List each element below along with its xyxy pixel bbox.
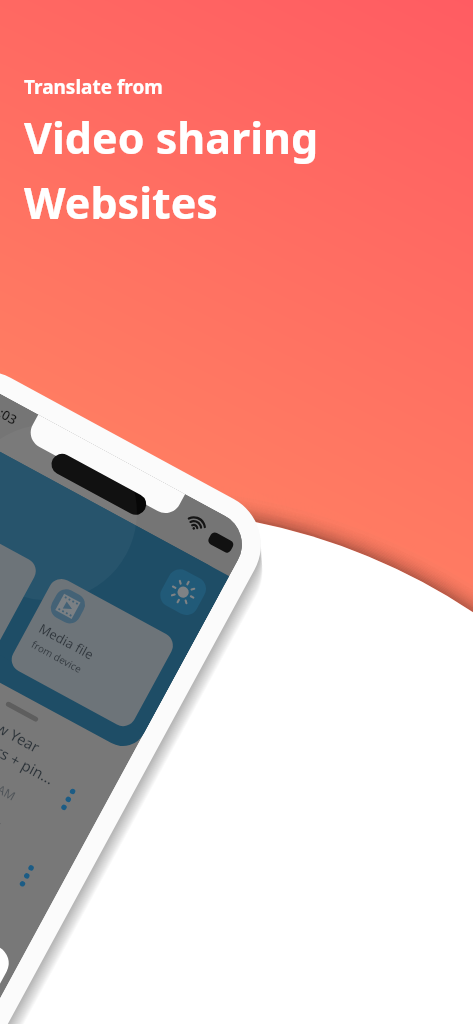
staticText: Video sharing: [24, 108, 319, 167]
staticText: Translate from: [24, 74, 163, 100]
staticText: Websites: [24, 173, 218, 232]
